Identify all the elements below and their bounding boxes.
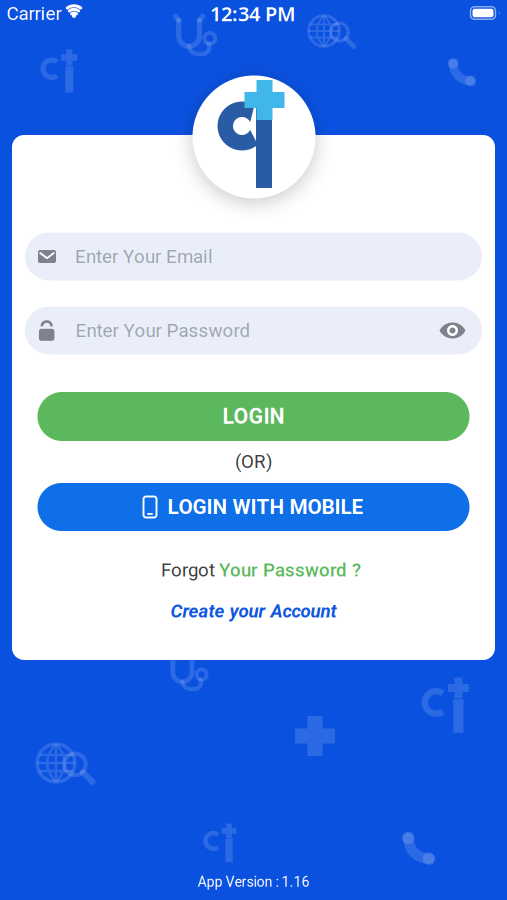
staticText: LOGIN [222,404,284,429]
button[interactable]: LOGIN WITH MOBILE [37,483,469,531]
staticText: Enter Your Email [75,246,213,267]
staticText: Your Password ? [219,559,361,581]
button[interactable]: Show Password [439,321,466,339]
staticText: Carrier [6,3,61,24]
staticText: App Version : 1.16 [197,874,309,890]
button[interactable]: Enter Your Password [25,306,482,354]
staticText: Create your Account [170,600,336,622]
staticText: LOGIN WITH MOBILE [167,495,363,519]
staticText: 12:34 PM [210,0,296,27]
staticText: Forgot [161,559,215,581]
button[interactable]: LOGIN [37,392,469,441]
staticText: (OR) [235,451,272,472]
button[interactable]: Forgot [161,559,361,581]
button[interactable]: Create your Account [170,600,336,622]
staticText: Enter Your Password [75,320,250,341]
button[interactable]: Enter Your Email [25,232,482,280]
